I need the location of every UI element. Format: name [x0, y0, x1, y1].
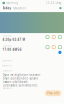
button[interactable]: Bookmark — [52, 35, 55, 39]
button[interactable]: Filter — [59, 7, 61, 9]
staticText: Utsatta grader — [2, 70, 12, 71]
button[interactable]: Dag Tisdag 8 — [0, 33, 64, 43]
button[interactable]: Share — [58, 46, 61, 49]
staticText: 17:00 4M 5G — [2, 48, 21, 51]
button[interactable]: Reply — [46, 35, 49, 39]
staticText: Dag Tisdag 9 — [2, 45, 11, 47]
staticText: 4:20p 02:47 M — [2, 38, 24, 41]
staticText: Navigation — [12, 6, 26, 10]
button[interactable]: Bookmark — [52, 46, 55, 49]
staticText: Dag Tisdag 8 — [2, 35, 11, 37]
button[interactable]: Reply — [46, 46, 49, 49]
staticText: 12:24 idag — [45, 1, 61, 5]
staticText: Visa allt — [47, 91, 59, 95]
staticText: Today — [2, 6, 10, 10]
staticText: Ett eftermiddag — [2, 87, 11, 89]
button[interactable]: Dag Tisdag 9 — [0, 43, 64, 56]
staticText: Morning — [6, 1, 18, 5]
button[interactable]: Visa allt — [45, 90, 61, 96]
staticText: Dyne mi digheten tea mini drain gonstund… — [2, 73, 40, 87]
staticText: Jamfort grund — [2, 65, 11, 67]
staticText: Minst hortensia — [2, 60, 12, 62]
button[interactable]: Share — [58, 35, 61, 39]
